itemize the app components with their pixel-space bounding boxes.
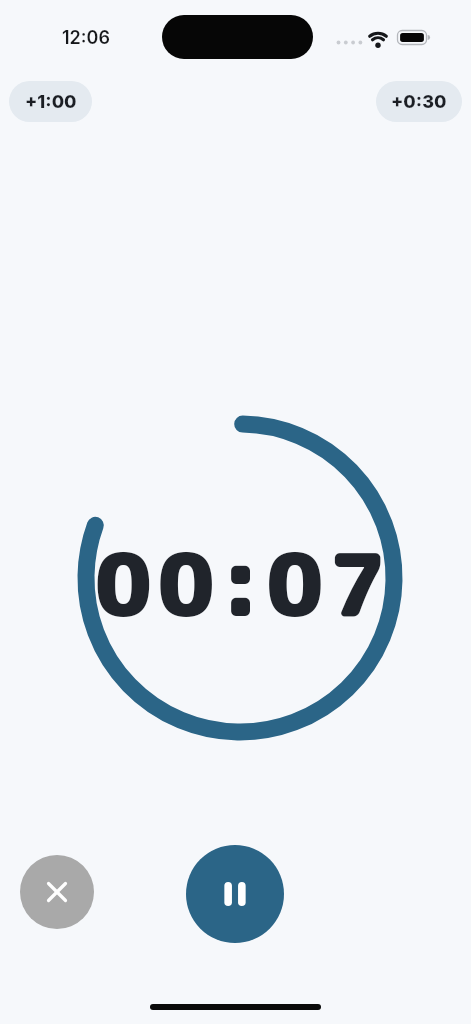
staticText: +1:00 — [25, 91, 77, 113]
button[interactable]: +1:00 — [9, 81, 92, 122]
staticText: +0:30 — [391, 91, 447, 113]
button[interactable] — [20, 855, 94, 929]
button[interactable] — [186, 845, 284, 943]
staticText: 00:07 — [95, 524, 393, 644]
button[interactable]: +0:30 — [376, 81, 462, 122]
staticText: 12:06 — [62, 27, 110, 49]
